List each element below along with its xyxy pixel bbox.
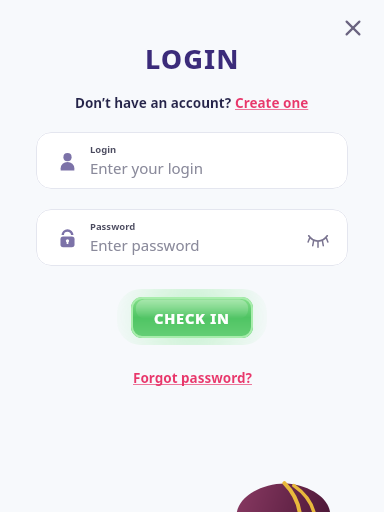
staticText: Enter your login (90, 158, 203, 178)
staticText: Enter password (90, 235, 200, 255)
staticText: Forgot password? (133, 369, 252, 387)
button[interactable]: Create one (235, 94, 309, 112)
button[interactable]: Login (36, 132, 348, 189)
staticText: CHECK IN (154, 308, 230, 328)
button[interactable]: Password (36, 209, 348, 266)
staticText: Password (90, 220, 136, 233)
button[interactable]: Show password (304, 224, 332, 252)
staticText: Don’t have an account? (75, 94, 235, 112)
staticText: Login (90, 143, 117, 156)
button[interactable]: Forgot password? (133, 369, 252, 387)
button[interactable]: Close (333, 8, 373, 48)
staticText: LOGIN (145, 40, 240, 77)
staticText: Create one (235, 94, 309, 112)
button[interactable]: CHECK IN (131, 297, 253, 338)
